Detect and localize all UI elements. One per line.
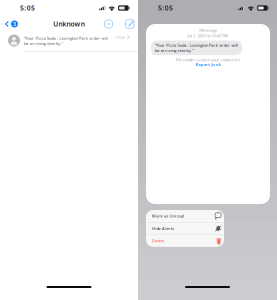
staticText: Mark as Unread: [152, 213, 184, 219]
staticText: Jul 1, 2021 at 10:42 PM: [188, 33, 228, 38]
staticText: Hide Alerts: [152, 226, 174, 231]
staticText: Report Junk: [195, 62, 220, 67]
button[interactable]: Block this caller: [103, 17, 115, 31]
staticText: 3: [13, 20, 16, 28]
staticText: 7/1/21: [115, 34, 125, 40]
button[interactable]: Delete: [146, 235, 224, 247]
staticText: Unknown: [53, 20, 85, 28]
staticText: 5:05: [20, 4, 35, 12]
button[interactable]: Hide Alerts: [146, 222, 224, 234]
button[interactable]: “Your Pizza Soda - Lexington Park order …: [0, 31, 138, 52]
staticText: iMessage: [199, 27, 217, 33]
button[interactable]: Compose new message: [115, 17, 134, 31]
staticText: The sender is not in your contact list.: [175, 57, 240, 62]
button[interactable]: Back: [0, 18, 18, 30]
staticText: “Your Pizza Soda - Lexington Park order …: [155, 42, 238, 53]
staticText: 5:05: [158, 4, 173, 12]
staticText: “Your Pizza Soda - Lexington Park order …: [24, 35, 108, 46]
staticText: Delete: [152, 238, 164, 243]
button[interactable]: Report Junk: [192, 62, 223, 68]
button[interactable]: Mark as Unread: [146, 210, 224, 222]
